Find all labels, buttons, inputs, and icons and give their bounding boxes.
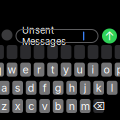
staticText: i bbox=[91, 63, 94, 76]
button[interactable]: a bbox=[0, 81, 9, 95]
button[interactable]: u bbox=[74, 63, 85, 77]
staticText: x bbox=[15, 99, 21, 112]
staticText: t bbox=[51, 63, 54, 76]
button[interactable]: Back bbox=[1, 29, 12, 40]
button[interactable]: p bbox=[115, 63, 120, 77]
button[interactable]: s bbox=[12, 81, 23, 95]
staticText: p bbox=[116, 63, 120, 76]
button[interactable]: v bbox=[39, 99, 50, 113]
staticText: w bbox=[7, 63, 16, 76]
button[interactable]: t bbox=[47, 63, 58, 77]
staticText: q bbox=[0, 63, 2, 76]
button[interactable]: f bbox=[39, 81, 50, 95]
staticText: j bbox=[84, 81, 87, 94]
staticText: h bbox=[69, 81, 75, 94]
staticText: z bbox=[1, 99, 7, 112]
staticText: n bbox=[69, 99, 75, 112]
button[interactable]: i bbox=[88, 63, 98, 77]
button[interactable]: x bbox=[12, 99, 23, 113]
staticText: y bbox=[63, 63, 69, 76]
staticText: Unsent Messages bbox=[22, 25, 66, 47]
button[interactable]: o bbox=[101, 63, 112, 77]
staticText: k bbox=[96, 81, 102, 94]
button[interactable]: ⌫ bbox=[93, 99, 104, 113]
button[interactable]: k bbox=[93, 81, 104, 95]
button[interactable]: e bbox=[20, 63, 31, 77]
staticText: v bbox=[42, 99, 48, 112]
staticText: m bbox=[81, 99, 90, 112]
staticText: a bbox=[1, 81, 7, 94]
button[interactable]: z bbox=[0, 99, 9, 113]
button[interactable]: m bbox=[80, 99, 90, 113]
staticText: l bbox=[111, 81, 114, 94]
button[interactable]: w bbox=[7, 63, 17, 77]
staticText: d bbox=[28, 81, 35, 94]
button[interactable]: n bbox=[66, 99, 77, 113]
button[interactable]: q bbox=[0, 63, 4, 77]
button[interactable]: r bbox=[34, 63, 44, 77]
staticText: r bbox=[37, 63, 41, 76]
button[interactable]: Send bbox=[102, 28, 117, 43]
button[interactable]: y bbox=[61, 63, 71, 77]
staticText: ↑ bbox=[104, 29, 114, 43]
staticText: g bbox=[55, 81, 62, 94]
staticText: f bbox=[43, 81, 47, 94]
staticText: s bbox=[15, 81, 21, 94]
staticText: o bbox=[103, 63, 109, 76]
button[interactable]: b bbox=[53, 99, 63, 113]
button[interactable]: c bbox=[26, 99, 36, 113]
staticText: e bbox=[22, 63, 28, 76]
staticText: u bbox=[76, 63, 82, 76]
button[interactable]: h bbox=[66, 81, 77, 95]
button[interactable]: g bbox=[53, 81, 63, 95]
button[interactable]: d bbox=[26, 81, 36, 95]
staticText: b bbox=[55, 99, 62, 112]
button[interactable]: l bbox=[107, 81, 117, 95]
button[interactable]: j bbox=[80, 81, 90, 95]
staticText: c bbox=[28, 99, 34, 112]
staticText: ⌫ bbox=[92, 99, 105, 112]
